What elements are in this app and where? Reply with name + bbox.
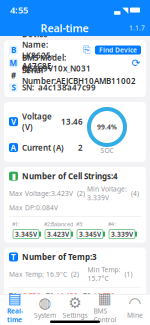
staticText: ◍ xyxy=(38,294,51,311)
staticText: ▤ xyxy=(8,290,22,307)
staticText: (2) xyxy=(67,270,79,279)
staticText: Current (A) xyxy=(22,142,64,153)
button[interactable]: ▦ xyxy=(90,289,120,324)
staticText: SN: a4c138a47c99 xyxy=(22,82,96,93)
staticText: (1) xyxy=(120,270,132,279)
staticText: 16.7°C xyxy=(93,291,114,300)
staticText: B xyxy=(11,45,16,55)
button[interactable]: Copy device name xyxy=(82,45,91,54)
staticText: #1: xyxy=(12,220,19,228)
staticText: ⚙ xyxy=(68,294,81,311)
staticText: BMS Control xyxy=(93,306,116,324)
staticText: #2:Balanced xyxy=(44,220,73,228)
staticText: Real-time xyxy=(7,306,23,324)
staticText: Mine xyxy=(127,311,143,320)
staticText: T xyxy=(11,252,16,262)
staticText: 15.7°C xyxy=(19,291,40,300)
button[interactable]: 1.1.7 xyxy=(129,24,150,32)
staticText: ▮ xyxy=(11,172,15,181)
button[interactable]: ▤ xyxy=(0,289,30,324)
staticText: ⎘ xyxy=(83,45,90,54)
staticText: BMS Model: RJS369V10x_N031 xyxy=(22,52,91,74)
button[interactable]: Find Device xyxy=(95,45,141,54)
staticText: ◥ xyxy=(122,5,128,15)
staticText: Real-time xyxy=(40,21,88,35)
staticText: 13.46 xyxy=(61,116,83,127)
staticText: ◠ xyxy=(128,294,141,311)
staticText: A xyxy=(10,142,16,153)
staticText: M xyxy=(9,58,17,68)
button[interactable]: ◍ xyxy=(30,293,60,320)
staticText: #3: xyxy=(76,220,83,228)
staticText: T1: xyxy=(9,291,19,300)
staticText: (2) xyxy=(73,189,85,198)
staticText: #4 : xyxy=(108,220,116,228)
staticText: 99.4% xyxy=(97,123,117,131)
staticText: Min Voltage:3.339V xyxy=(87,184,127,202)
staticText: (4) xyxy=(127,189,139,198)
staticText: Find Device xyxy=(99,46,137,54)
staticText: S xyxy=(11,82,15,93)
staticText: Serial Number:AEJCBH10AMB11002 xyxy=(22,65,136,86)
staticText: V xyxy=(11,116,16,127)
staticText: Max DP:0.084V xyxy=(9,203,58,212)
staticText: SOC xyxy=(100,146,113,155)
staticText: Device Name: LK8625-A47C8E xyxy=(22,29,54,71)
staticText: Max Temp: 16.9°C xyxy=(9,270,67,279)
staticText: 3.423V xyxy=(47,230,69,239)
staticText: Min Temp: 15.7°C xyxy=(87,265,120,283)
staticText: T3: xyxy=(83,291,93,300)
staticText: ⟳ xyxy=(131,57,140,69)
staticText: Number of Temp:3 xyxy=(22,252,97,262)
staticText: 3.345V xyxy=(15,230,37,239)
staticText: ▦ xyxy=(98,290,112,307)
staticText: Settings xyxy=(62,311,87,320)
staticText: # xyxy=(11,70,16,81)
staticText: ▃ xyxy=(114,5,120,15)
staticText: 3.345V xyxy=(79,230,101,239)
staticText: 4:55 xyxy=(10,4,28,16)
staticText: 1.1.7 xyxy=(129,24,145,32)
staticText: Number of Cell Strings:4 xyxy=(22,171,118,181)
staticText: Voltage (V) xyxy=(22,111,52,132)
staticText: 2 xyxy=(78,142,83,153)
button[interactable]: ◠ xyxy=(120,293,150,320)
staticText: 16.0°C xyxy=(56,291,77,300)
button[interactable]: Refresh xyxy=(131,58,141,68)
staticText: T2: xyxy=(46,291,56,300)
button[interactable]: ⚙ xyxy=(60,293,90,320)
staticText: Max Voltage:3.423V xyxy=(9,189,73,198)
staticText: System xyxy=(34,311,56,320)
staticText: 3.339V xyxy=(111,230,133,239)
